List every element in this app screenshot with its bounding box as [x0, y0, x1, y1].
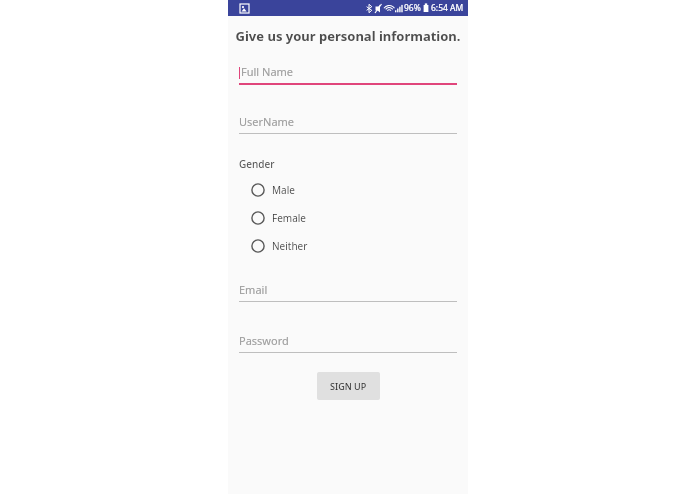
other: Screenshot	[240, 4, 249, 13]
staticText: SIGN UP	[330, 380, 367, 392]
button[interactable]: Email	[239, 282, 457, 302]
button[interactable]: Male	[239, 176, 457, 204]
button[interactable]: SIGN UP	[317, 372, 380, 400]
staticText: Password	[239, 333, 289, 348]
staticText: 6:54 AM	[431, 2, 464, 14]
staticText: Email	[239, 282, 268, 297]
button[interactable]: Neither	[239, 232, 457, 260]
staticText: Male	[272, 183, 295, 197]
staticText: Female	[272, 211, 307, 225]
staticText: UserName	[239, 114, 295, 129]
staticText: Neither	[272, 239, 308, 253]
staticText: Give us your personal information.	[232, 27, 464, 45]
button[interactable]: UserName	[239, 114, 457, 134]
button[interactable]: Full Name	[239, 64, 457, 85]
button[interactable]: Female	[239, 204, 457, 232]
staticText: Full Name	[241, 64, 294, 79]
button[interactable]: Password	[239, 333, 457, 353]
staticText: 96%	[404, 2, 421, 14]
staticText: Gender	[239, 157, 275, 171]
